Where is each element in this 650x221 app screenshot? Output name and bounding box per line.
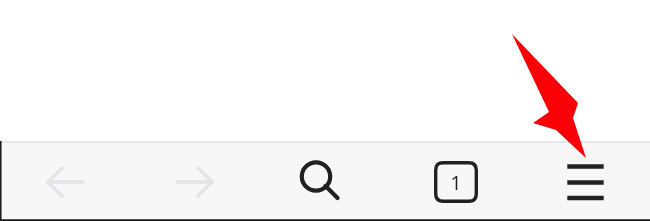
button[interactable]: Tabs, 1 open	[434, 161, 478, 203]
staticText: 1	[450, 169, 462, 196]
button[interactable]: Menu	[564, 157, 608, 207]
button[interactable]: Forward	[170, 157, 220, 207]
button[interactable]: Back	[40, 157, 90, 207]
button[interactable]: Search	[296, 156, 348, 208]
